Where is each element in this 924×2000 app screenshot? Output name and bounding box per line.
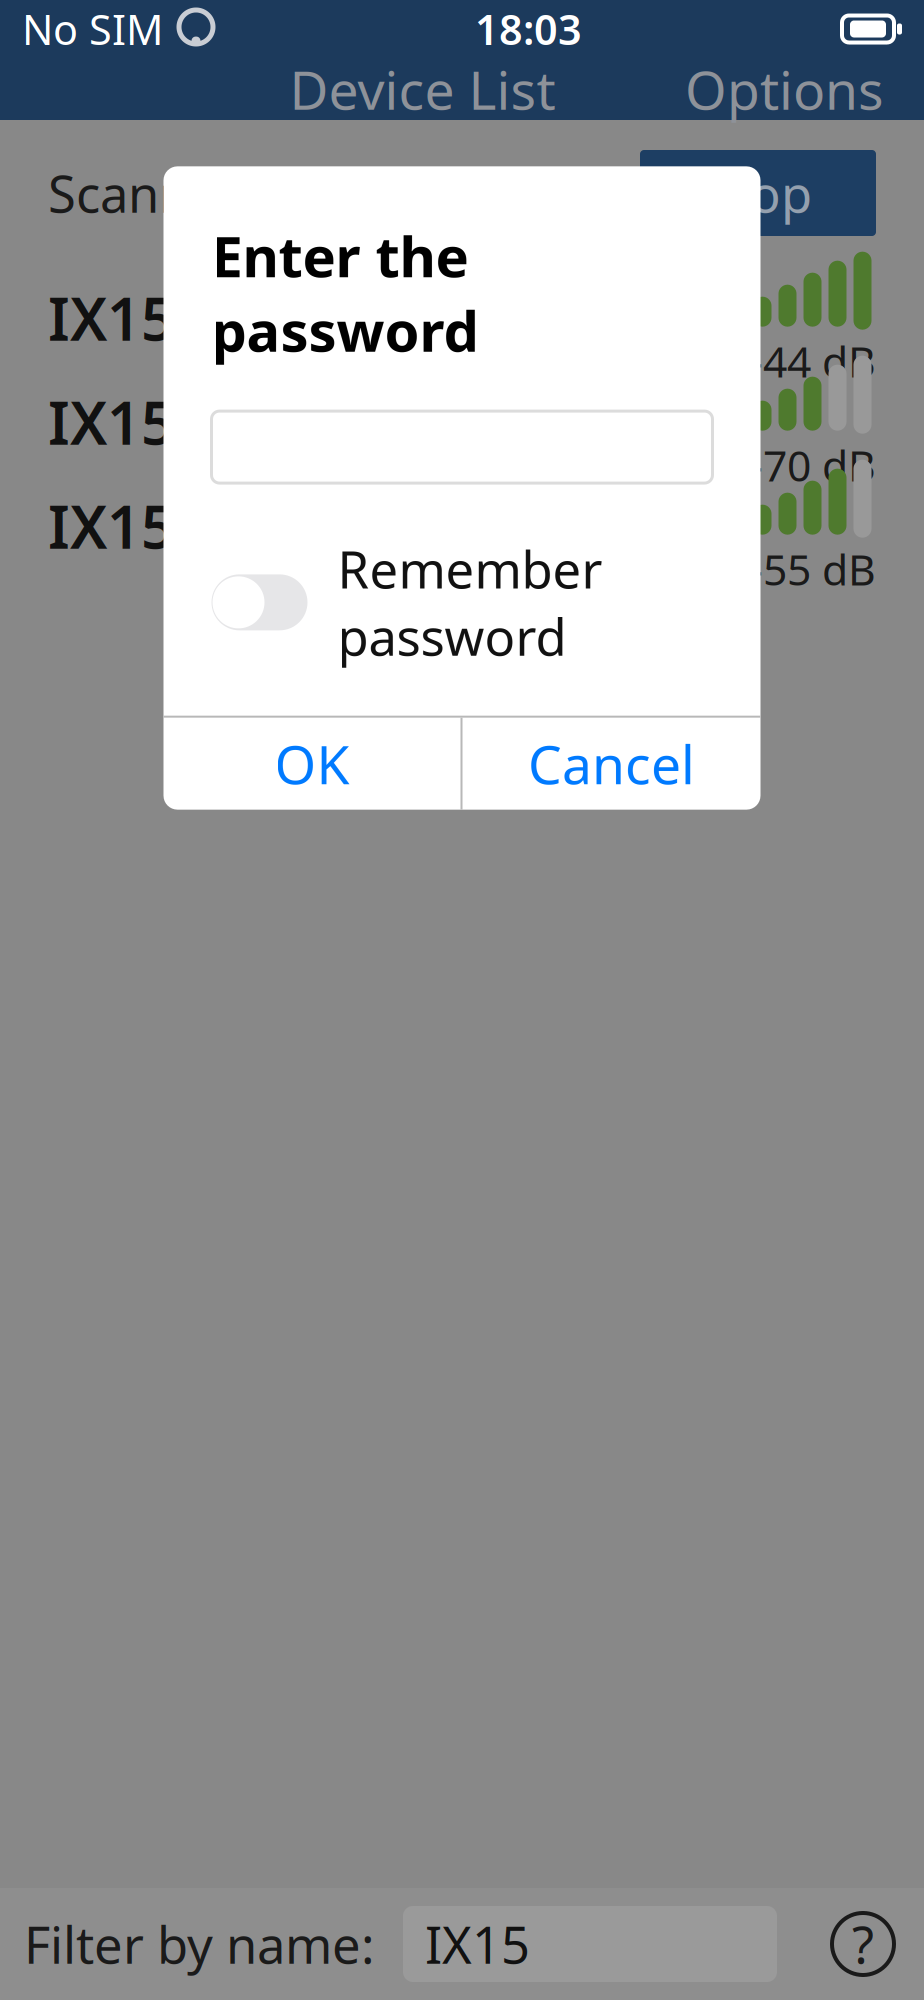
staticText: OK	[274, 728, 349, 799]
button[interactable]: IX15	[0, 474, 924, 578]
button[interactable]: IX15	[0, 266, 924, 370]
staticText: -44 dB	[749, 333, 876, 389]
staticText: IX15	[48, 383, 175, 461]
staticText: Options	[685, 54, 884, 124]
staticText: Device List	[289, 54, 555, 124]
staticText: IX15	[425, 1910, 530, 1978]
staticText: Stop	[704, 159, 812, 227]
staticText: Enter the password	[211, 218, 478, 367]
button[interactable]: Remember password toggle	[211, 574, 307, 630]
staticText: Filter by name:	[24, 1910, 375, 1978]
staticText: IX15	[48, 279, 175, 357]
button[interactable]: OK	[163, 718, 460, 810]
staticText: Remember password	[337, 535, 602, 670]
staticText: Scanning	[48, 159, 265, 227]
button[interactable]: Cancel	[462, 718, 760, 810]
staticText: ?	[852, 1910, 874, 1978]
staticText: -55 dB	[749, 541, 876, 597]
staticText: 18:03	[475, 2, 582, 56]
staticText: IX15	[48, 487, 175, 565]
button[interactable]: Help	[832, 1910, 894, 1978]
staticText: Cancel	[528, 728, 695, 799]
button[interactable]: IX15	[0, 370, 924, 474]
button[interactable]: Options	[675, 46, 894, 132]
staticText: No SIM	[22, 2, 163, 56]
button[interactable]: IX15	[403, 1906, 777, 1982]
button[interactable]: Stop	[640, 150, 876, 236]
staticText: -70 dB	[749, 437, 876, 493]
